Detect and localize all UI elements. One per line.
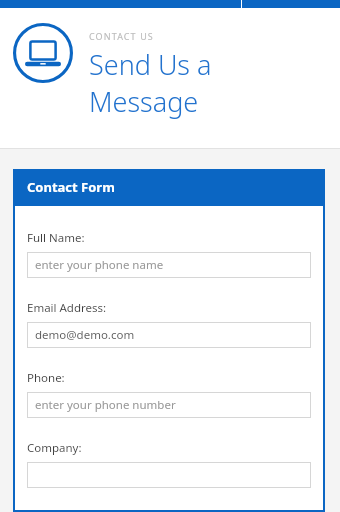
button[interactable]: Contact Form [13,169,325,204]
button[interactable]: demo@demo.com [27,322,311,348]
button[interactable]: enter your phone name [27,252,311,278]
staticText: enter your phone name [35,257,164,273]
button[interactable]: enter your phone number [27,392,311,418]
staticText: enter your phone number [35,397,176,413]
staticText: demo@demo.com [35,327,135,343]
staticText: Full Name: [27,230,85,246]
staticText: Message [89,83,199,120]
staticText: Company: [27,440,82,456]
staticText: CONTACT US [89,30,154,42]
staticText: Send Us a [89,46,212,83]
staticText: Phone: [27,370,65,386]
staticText: Email Address: [27,300,107,316]
button[interactable] [27,462,311,488]
staticText: Contact Form [27,178,115,196]
other: Contact us [13,23,73,83]
